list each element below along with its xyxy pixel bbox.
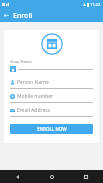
- staticText: Enroll: [13, 11, 33, 21]
- button[interactable]: ENROLL NOW: [10, 124, 93, 134]
- staticText: Mobile number: [17, 93, 54, 100]
- button[interactable]: Email Address: [10, 103, 93, 117]
- button[interactable]: Person Name: [10, 75, 93, 89]
- staticText: Shop Name: [10, 59, 32, 64]
- button[interactable]: Back: [0, 9, 13, 22]
- button[interactable]: Recents: [69, 170, 103, 183]
- button[interactable]: Back: [0, 170, 35, 183]
- staticText: 11:22: [90, 2, 101, 7]
- staticText: Person Name: [17, 79, 49, 86]
- button[interactable]: Shop photo: [41, 33, 63, 55]
- button[interactable]: Home: [35, 170, 69, 183]
- button[interactable]: Mobile number: [10, 89, 93, 103]
- staticText: ENROLL NOW: [37, 126, 67, 132]
- staticText: Email Address: [17, 107, 51, 114]
